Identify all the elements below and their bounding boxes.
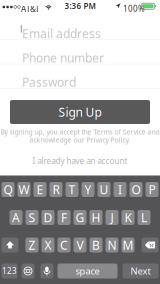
staticText: O bbox=[131, 181, 140, 197]
staticText: space bbox=[75, 265, 99, 277]
staticText: H bbox=[91, 209, 100, 225]
staticText: U bbox=[99, 181, 108, 197]
button[interactable]: H bbox=[0, 175, 160, 284]
button[interactable]: X bbox=[0, 175, 160, 284]
staticText: I already have an account bbox=[32, 156, 127, 166]
staticText: Phone number bbox=[22, 50, 104, 66]
button[interactable]: V bbox=[0, 175, 160, 284]
button[interactable] bbox=[0, 175, 160, 284]
staticText: S bbox=[28, 209, 35, 225]
staticText: K bbox=[124, 209, 131, 225]
button[interactable]: G bbox=[0, 175, 160, 284]
button[interactable]: T bbox=[0, 175, 160, 284]
staticText: L bbox=[141, 209, 147, 225]
staticText: Q bbox=[3, 181, 12, 197]
staticText: 100% bbox=[123, 3, 145, 14]
button[interactable]: U bbox=[0, 175, 160, 284]
button[interactable] bbox=[0, 175, 160, 284]
button[interactable]: F bbox=[0, 175, 160, 284]
staticText: B bbox=[92, 237, 100, 253]
staticText: Z bbox=[28, 237, 35, 253]
staticText: F bbox=[61, 209, 67, 225]
staticText: Email address bbox=[22, 25, 101, 41]
button[interactable]: B bbox=[0, 175, 160, 284]
button[interactable]: P bbox=[0, 175, 160, 284]
staticText: D bbox=[43, 209, 52, 225]
staticText: P bbox=[148, 181, 155, 197]
button[interactable]: R bbox=[0, 175, 160, 284]
staticText: J bbox=[110, 209, 113, 225]
staticText: acknowledge our Privacy Policy. bbox=[29, 136, 130, 144]
button[interactable]: I already have an account bbox=[0, 155, 160, 167]
button[interactable] bbox=[0, 175, 160, 284]
button[interactable]: 123 bbox=[0, 175, 160, 284]
button[interactable]: A bbox=[0, 175, 160, 284]
button[interactable]: K bbox=[0, 175, 160, 284]
button[interactable]: C bbox=[0, 175, 160, 284]
staticText: M bbox=[122, 237, 133, 253]
staticText: C bbox=[60, 237, 68, 253]
staticText: X bbox=[44, 237, 51, 253]
button[interactable]: L bbox=[0, 175, 160, 284]
staticText: R bbox=[52, 181, 59, 197]
button[interactable]: Q bbox=[0, 175, 160, 284]
button[interactable]: E bbox=[0, 175, 160, 284]
button[interactable]: Email address bbox=[0, 0, 160, 284]
button[interactable]: D bbox=[0, 175, 160, 284]
button[interactable]: Next bbox=[0, 175, 160, 284]
staticText: By signing up, you accept the Terms of S… bbox=[0, 128, 159, 136]
staticText: Next bbox=[130, 265, 150, 277]
staticText: W bbox=[18, 181, 29, 197]
staticText: Y bbox=[84, 181, 91, 197]
button[interactable]: Phone number bbox=[0, 0, 160, 284]
staticText: A bbox=[12, 209, 20, 225]
staticText: Sign Up bbox=[58, 104, 101, 120]
button[interactable]: I bbox=[0, 175, 160, 284]
button[interactable]: O bbox=[0, 175, 160, 284]
staticText: T bbox=[68, 181, 75, 197]
button[interactable] bbox=[0, 175, 160, 284]
button[interactable]: Y bbox=[0, 175, 160, 284]
staticText: G bbox=[75, 209, 84, 225]
staticText: Password bbox=[22, 74, 76, 90]
staticText: V bbox=[76, 237, 83, 253]
staticText: AT&T bbox=[21, 4, 39, 14]
button[interactable]: Password bbox=[0, 0, 160, 284]
button[interactable]: space bbox=[0, 175, 160, 284]
staticText: 123 bbox=[2, 266, 17, 276]
button[interactable]: N bbox=[0, 175, 160, 284]
button[interactable]: J bbox=[0, 175, 160, 284]
button[interactable]: W bbox=[0, 175, 160, 284]
staticText: N bbox=[107, 237, 116, 253]
button[interactable]: Z bbox=[0, 175, 160, 284]
button[interactable]: S bbox=[0, 175, 160, 284]
staticText: I bbox=[118, 181, 122, 197]
staticText: 3:36 PM bbox=[64, 1, 95, 11]
button[interactable]: Sign Up bbox=[10, 100, 150, 124]
button[interactable]: M bbox=[0, 175, 160, 284]
staticText: E bbox=[36, 181, 43, 197]
